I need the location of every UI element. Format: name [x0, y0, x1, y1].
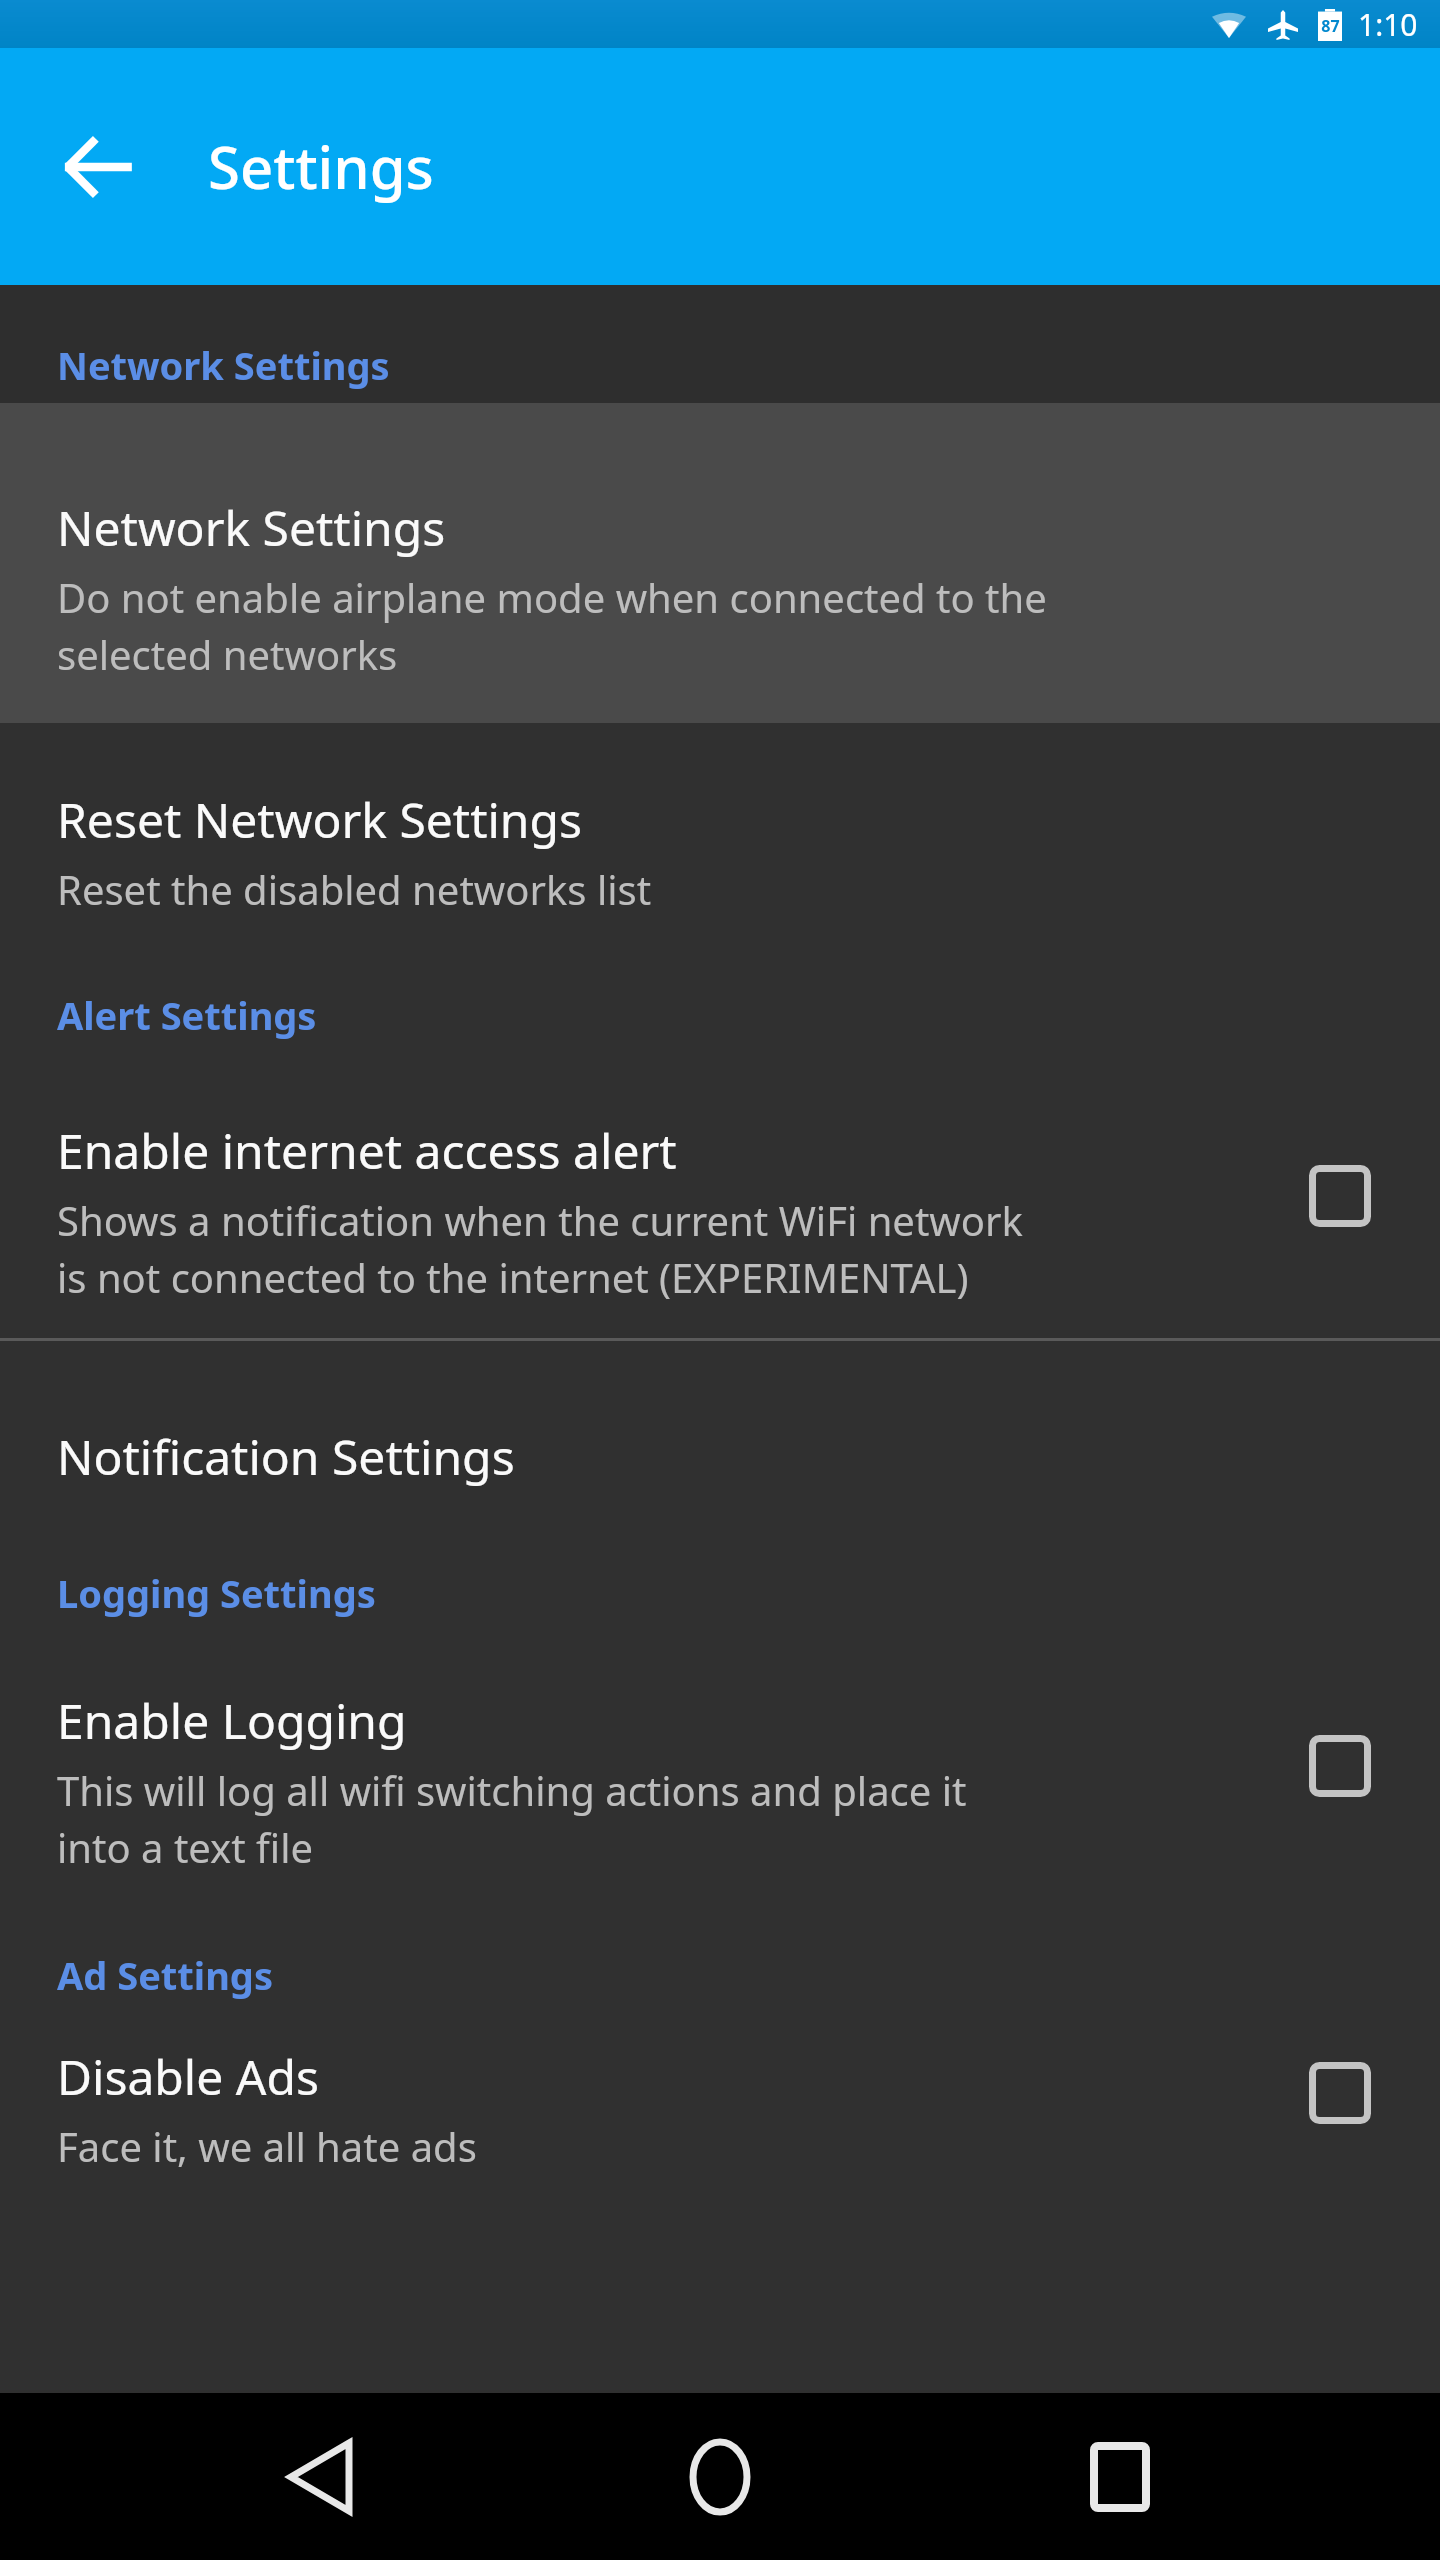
- button[interactable]: Network Settings: [0, 403, 1440, 723]
- staticText: Network Settings: [57, 495, 446, 560]
- staticText: Network Settings: [57, 339, 390, 391]
- staticText: Notification Settings: [57, 1424, 515, 1489]
- button[interactable]: Notification Settings: [0, 1341, 1440, 1516]
- button[interactable]: Home: [650, 2407, 790, 2547]
- button[interactable]: Disable Ads: [0, 2013, 1440, 2173]
- staticText: Reset Network Settings: [57, 787, 583, 852]
- staticText: Ad Settings: [57, 1949, 273, 2001]
- staticText: Reset the disabled networks list: [57, 862, 652, 916]
- staticText: Enable Logging: [57, 1688, 407, 1753]
- button[interactable]: Enable internet access alert: [0, 1053, 1440, 1338]
- staticText: Settings: [208, 127, 434, 206]
- button[interactable]: Toggle Disable Ads: [1285, 2038, 1395, 2148]
- staticText: Enable internet access alert: [57, 1118, 677, 1183]
- staticText: Alert Settings: [57, 989, 317, 1041]
- button[interactable]: Enable Logging: [0, 1631, 1440, 1901]
- button[interactable]: Recent apps: [1050, 2407, 1190, 2547]
- staticText: 1:10: [1358, 4, 1418, 45]
- button[interactable]: Back: [250, 2407, 390, 2547]
- staticText: Logging Settings: [57, 1567, 376, 1619]
- staticText: 87: [1321, 15, 1340, 37]
- button[interactable]: Reset Network Settings: [0, 723, 1440, 938]
- staticText: Shows a notification when the current Wi…: [57, 1193, 1023, 1304]
- staticText: Disable Ads: [57, 2044, 319, 2109]
- staticText: This will log all wifi switching actions…: [57, 1763, 967, 1874]
- staticText: Do not enable airplane mode when connect…: [57, 570, 1047, 681]
- staticText: Face it, we all hate ads: [57, 2119, 477, 2173]
- button[interactable]: Toggle Enable Logging: [1285, 1711, 1395, 1821]
- button[interactable]: Toggle Enable internet access alert: [1285, 1141, 1395, 1251]
- button[interactable]: Back: [34, 103, 162, 231]
